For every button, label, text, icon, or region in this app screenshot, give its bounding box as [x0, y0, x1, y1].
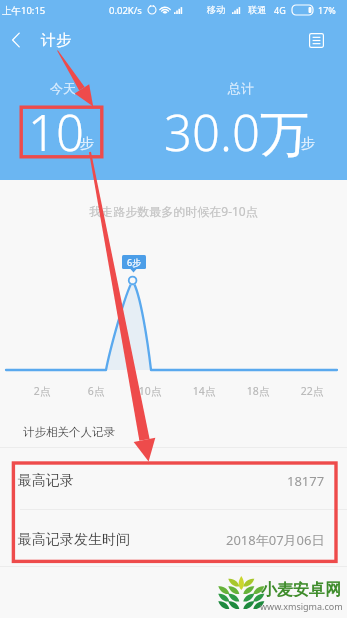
button[interactable]: 最高记录 — [0, 451, 347, 510]
staticText: 步 — [80, 135, 94, 153]
staticText: 步 — [301, 135, 315, 153]
staticText: 我走路步数最多的时候在9-10点 — [0, 203, 347, 219]
staticText: 2点 — [24, 384, 60, 398]
staticText: 联通 — [248, 4, 266, 15]
staticText: 最高记录发生时间 — [18, 531, 130, 549]
staticText: 总计 — [220, 80, 262, 96]
button[interactable]: 最高记录发生时间 — [0, 510, 347, 569]
staticText: 22点 — [294, 384, 330, 398]
staticText: 2018年07月06日 — [226, 531, 325, 549]
staticText: 10点 — [132, 384, 168, 398]
staticText: 17% — [318, 4, 336, 16]
staticText: 14点 — [186, 384, 222, 398]
staticText: 计步相关个人记录 — [23, 425, 115, 439]
staticText: 小麦安卓网 — [261, 580, 341, 600]
staticText: 6点 — [78, 384, 114, 398]
staticText: 计步 — [41, 31, 71, 50]
staticText: 上午10:15 — [2, 4, 46, 17]
staticText: 今天 — [42, 80, 84, 96]
staticText: 18177 — [287, 472, 325, 490]
staticText: 30.0万 — [164, 99, 309, 166]
staticText: 0.02K/s — [109, 4, 142, 17]
staticText: 移动 — [207, 4, 225, 15]
staticText: 10 — [28, 99, 84, 166]
button[interactable]: Back — [0, 23, 31, 57]
staticText: www.xmsigma.com — [260, 600, 343, 612]
button[interactable]: Records — [296, 23, 336, 57]
staticText: 最高记录 — [18, 472, 74, 490]
staticText: 4G — [274, 4, 286, 16]
staticText: 6步 — [127, 256, 142, 268]
staticText: 18点 — [240, 384, 276, 398]
